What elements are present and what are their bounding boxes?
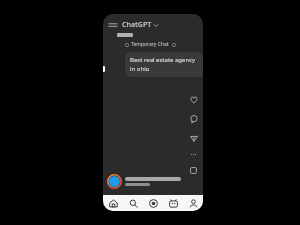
button[interactable]: Reels — [163, 195, 183, 211]
staticText: ChatGPT — [122, 20, 152, 30]
button[interactable]: Profile — [183, 195, 203, 211]
button[interactable]: Share — [188, 132, 199, 143]
button[interactable]: Search — [123, 195, 143, 211]
staticText: Best real estate agency in ohio — [130, 56, 198, 73]
button[interactable]: Temporary Chat — [125, 41, 176, 48]
button[interactable]: Home — [103, 195, 123, 211]
button[interactable]: More options — [188, 149, 199, 160]
button[interactable]: ChatGPT — [120, 19, 160, 31]
staticText: Temporary Chat — [131, 41, 169, 48]
button[interactable]: Menu — [107, 19, 119, 31]
button[interactable]: Save — [188, 165, 199, 176]
button[interactable]: Create — [143, 195, 163, 211]
button[interactable]: Best real estate agency in ohio — [125, 52, 203, 77]
button[interactable]: Comment — [188, 113, 199, 124]
button[interactable]: Like — [188, 94, 199, 105]
button[interactable]: Profile — [107, 174, 122, 189]
